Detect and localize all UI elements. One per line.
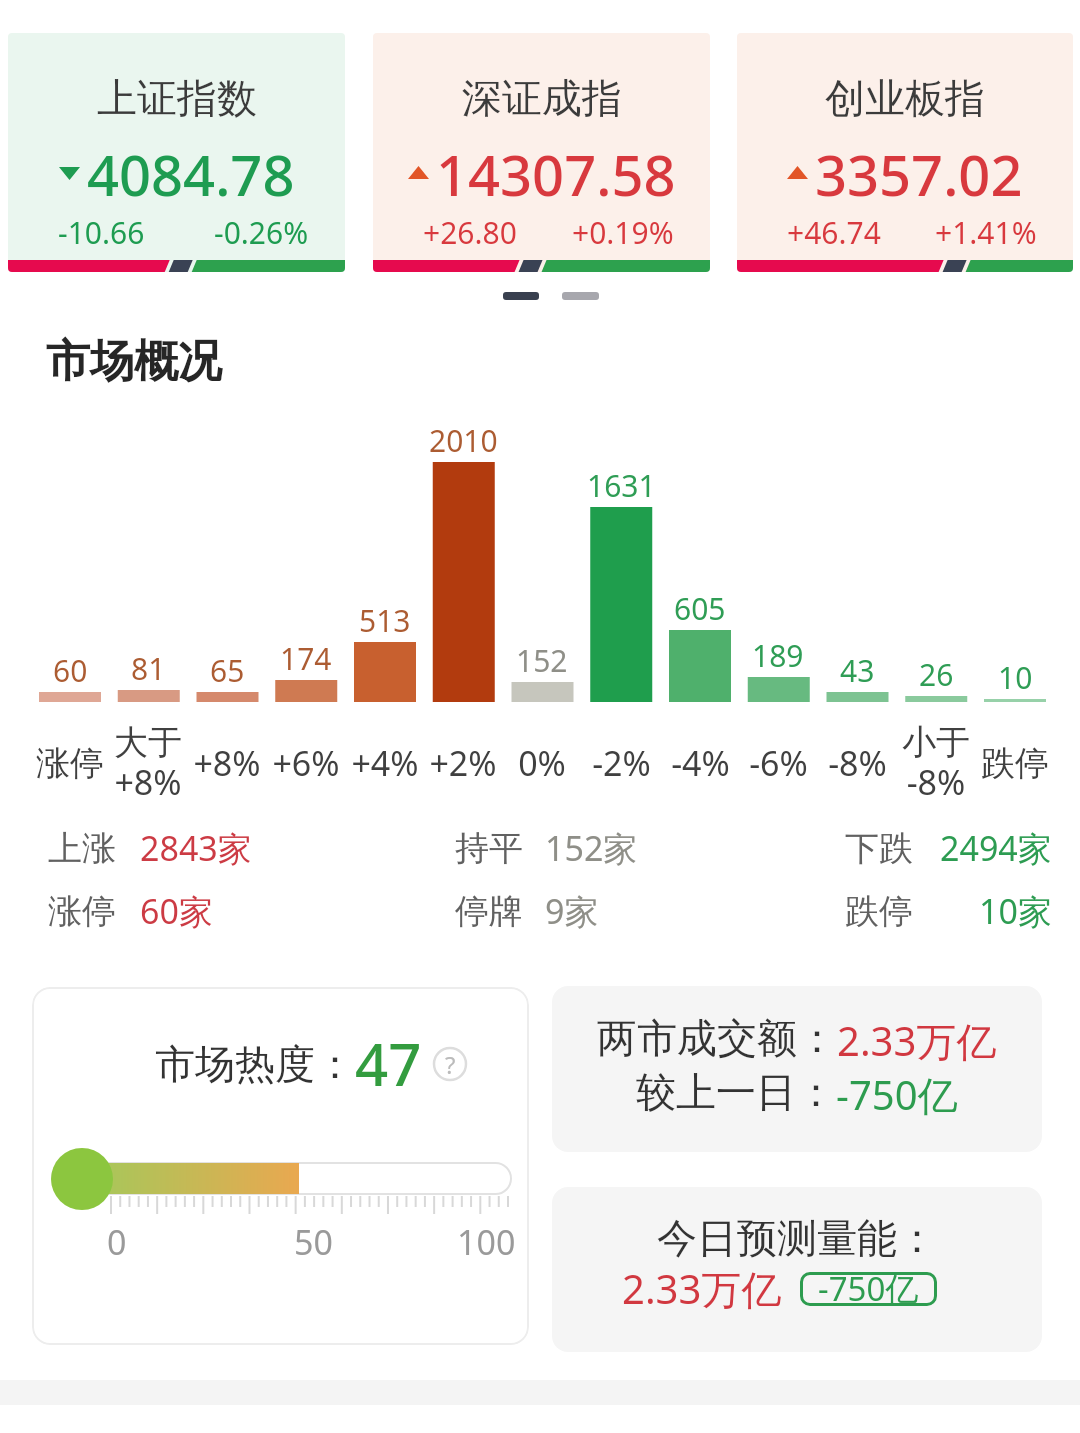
staticText: -10.66 <box>58 212 145 253</box>
staticText: 47 <box>355 1024 422 1103</box>
staticText: 60 <box>53 650 88 688</box>
staticText: +0.19% <box>572 212 674 253</box>
staticText: 上证指数 <box>97 73 257 123</box>
staticText: 今日预测量能： <box>657 1213 937 1263</box>
staticText: 513 <box>359 600 411 638</box>
staticText: 市场概况 <box>46 334 222 389</box>
staticText: -4% <box>671 740 730 786</box>
staticText: 0 <box>107 1219 127 1265</box>
staticText: 152家 <box>545 825 638 871</box>
staticText: 上涨 <box>48 827 116 870</box>
button[interactable]: ? <box>432 1046 468 1082</box>
staticText: 深证成指 <box>462 73 622 123</box>
staticText: 2843家 <box>140 825 252 871</box>
staticText: 大于 +8% <box>114 721 182 805</box>
button[interactable]: 创业板指 <box>737 33 1073 272</box>
button[interactable]: 上证指数 <box>8 33 345 272</box>
staticText: 2.33万亿 <box>837 1013 997 1068</box>
staticText: 较上一日： <box>636 1067 836 1117</box>
staticText: 涨停 <box>36 742 104 785</box>
staticText: -6% <box>749 740 808 786</box>
staticText: 50 <box>294 1219 333 1265</box>
staticText: 65 <box>210 650 245 688</box>
staticText: +46.74 <box>787 212 881 253</box>
button[interactable]: 两市成交额： <box>552 986 1042 1152</box>
staticText: 10 <box>998 657 1033 695</box>
staticText: 两市成交额： <box>597 1013 837 1063</box>
staticText: +6% <box>272 740 340 786</box>
staticText: +26.80 <box>423 212 517 253</box>
button[interactable]: 深证成指 <box>373 33 710 272</box>
staticText: 605 <box>674 588 726 626</box>
staticText: 2010 <box>429 420 498 458</box>
staticText: +2% <box>429 740 497 786</box>
staticText: 60家 <box>140 888 213 934</box>
staticText: 市场热度： <box>155 1039 355 1089</box>
staticText: 43 <box>840 650 875 688</box>
staticText: 4084.78 <box>87 136 295 210</box>
staticText: +4% <box>351 740 419 786</box>
staticText: 持平 <box>455 827 523 870</box>
staticText: 9家 <box>545 888 599 934</box>
staticText: 跌停 <box>845 890 913 933</box>
staticText: 0% <box>518 740 566 786</box>
button[interactable]: 市场热度： <box>32 987 529 1345</box>
staticText: +1.41% <box>935 212 1037 253</box>
staticText: 3357.02 <box>815 136 1023 210</box>
staticText: 涨停 <box>48 890 116 933</box>
staticText: 10家 <box>979 888 1052 934</box>
staticText: ? <box>445 1048 456 1081</box>
staticText: 81 <box>131 648 166 686</box>
staticText: 174 <box>280 638 332 676</box>
staticText: +8% <box>193 740 261 786</box>
staticText: -750亿 <box>818 1266 919 1311</box>
staticText: 停牌 <box>455 890 523 933</box>
staticText: -2% <box>592 740 651 786</box>
staticText: 2494家 <box>940 825 1052 871</box>
staticText: 189 <box>752 635 804 673</box>
staticText: 创业板指 <box>825 73 985 123</box>
staticText: 1631 <box>587 465 656 503</box>
staticText: 152 <box>516 640 568 678</box>
staticText: 2.33万亿 <box>622 1261 782 1316</box>
staticText: 跌停 <box>981 742 1049 785</box>
staticText: -750亿 <box>836 1067 958 1122</box>
staticText: 下跌 <box>845 827 913 870</box>
staticText: -0.26% <box>214 212 309 253</box>
button[interactable]: 今日预测量能： <box>552 1187 1042 1352</box>
staticText: -8% <box>828 740 887 786</box>
staticText: 14307.58 <box>436 136 676 210</box>
staticText: 小于 -8% <box>902 721 970 805</box>
staticText: 100 <box>457 1219 516 1265</box>
staticText: 26 <box>919 654 954 692</box>
